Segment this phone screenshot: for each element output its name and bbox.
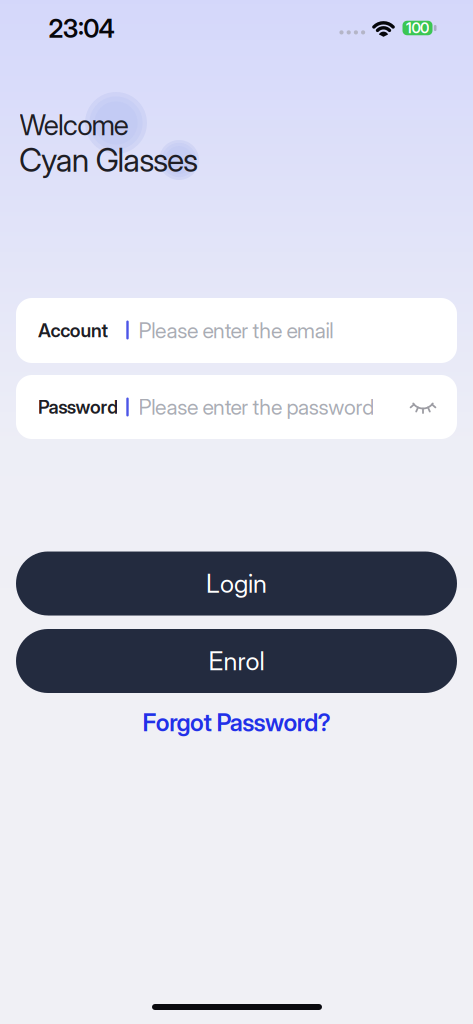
staticText: Account — [38, 319, 109, 341]
staticText: Welcome — [19, 108, 129, 141]
staticText: Please enter the email — [138, 318, 333, 343]
staticText: Login — [206, 569, 267, 598]
staticText: Forgot — [142, 708, 211, 737]
staticText: Password? — [216, 708, 331, 737]
staticText: 23:04 — [49, 14, 114, 43]
staticText: Password — [38, 396, 118, 418]
staticText: Cyan Glasses — [19, 141, 198, 179]
staticText: Enrol — [208, 646, 264, 676]
staticText: Please enter the password — [138, 394, 374, 420]
staticText: 100 — [406, 19, 429, 37]
